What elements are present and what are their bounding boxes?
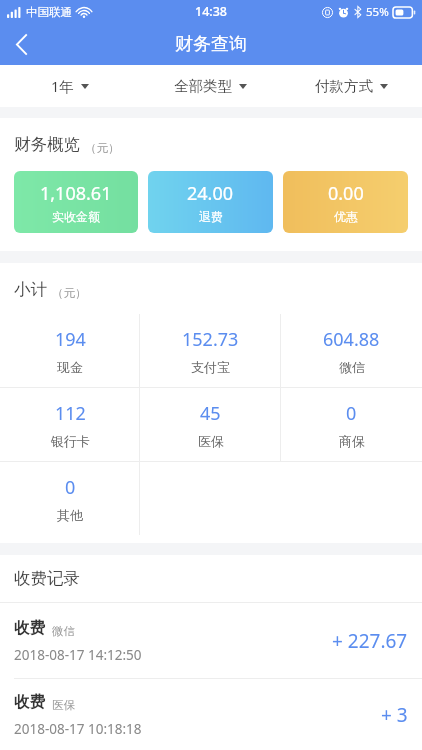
button[interactable]: 0 xyxy=(281,388,422,461)
button[interactable]: 604.88 xyxy=(281,314,422,387)
staticText: + 3 xyxy=(381,702,408,728)
staticText: 45 xyxy=(200,401,221,426)
button[interactable]: 45 xyxy=(140,388,281,461)
staticText: 财务概览 xyxy=(14,134,80,155)
staticText: 1,108.61 xyxy=(40,181,112,206)
staticText: 支付宝 xyxy=(191,359,230,375)
button[interactable]: 全部类型 xyxy=(140,65,281,107)
staticText: 中国联通 xyxy=(26,5,72,19)
button[interactable]: 付款方式 xyxy=(281,65,422,107)
staticText: 604.88 xyxy=(323,327,380,352)
button[interactable]: 0 xyxy=(0,462,140,535)
staticText: 收费 xyxy=(14,692,45,712)
staticText: 付款方式 xyxy=(315,77,373,95)
staticText: 55% xyxy=(366,4,389,20)
staticText: 实收金额 xyxy=(52,209,100,224)
staticText: 其他 xyxy=(57,507,83,523)
staticText: 24.00 xyxy=(187,181,234,206)
staticText: 2018-08-17 10:18:18 xyxy=(14,720,142,738)
staticText: 优惠 xyxy=(334,209,358,224)
button[interactable]: 0.00 xyxy=(283,171,408,233)
staticText: 0 xyxy=(346,401,357,426)
staticText: 收费 xyxy=(14,618,45,638)
staticText: 退费 xyxy=(199,209,223,224)
button[interactable]: 152.73 xyxy=(140,314,281,387)
staticText: 医保 xyxy=(198,433,224,449)
staticText: 银行卡 xyxy=(51,433,90,449)
staticText: 194 xyxy=(55,327,86,352)
staticText: 财务查询 xyxy=(175,33,247,56)
staticText: 全部类型 xyxy=(174,77,232,95)
button[interactable]: 1,108.61 xyxy=(14,171,138,233)
staticText: （元） xyxy=(52,286,87,300)
staticText: 112 xyxy=(55,401,86,426)
button[interactable]: 112 xyxy=(0,388,140,461)
button[interactable]: Back xyxy=(0,23,42,65)
button[interactable]: 194 xyxy=(0,314,140,387)
staticText: 微信 xyxy=(52,624,75,638)
staticText: 0.00 xyxy=(328,181,364,206)
staticText: 收费记录 xyxy=(14,568,80,589)
staticText: 152.73 xyxy=(182,327,239,352)
staticText: 0 xyxy=(65,475,76,500)
button[interactable]: 1年 xyxy=(0,65,140,107)
button[interactable]: 收费 xyxy=(0,603,422,678)
staticText: 现金 xyxy=(57,359,83,375)
button[interactable]: 收费 xyxy=(0,679,422,750)
staticText: + 227.67 xyxy=(332,628,408,654)
staticText: 微信 xyxy=(339,359,365,375)
staticText: 小计 xyxy=(14,279,47,300)
staticText: （元） xyxy=(85,141,120,155)
staticText: 2018-08-17 14:12:50 xyxy=(14,646,142,664)
staticText: 1年 xyxy=(51,76,74,96)
staticText: 14:38 xyxy=(195,3,228,20)
button[interactable]: 24.00 xyxy=(148,171,273,233)
staticText: 医保 xyxy=(52,698,75,712)
staticText: 商保 xyxy=(339,433,365,449)
